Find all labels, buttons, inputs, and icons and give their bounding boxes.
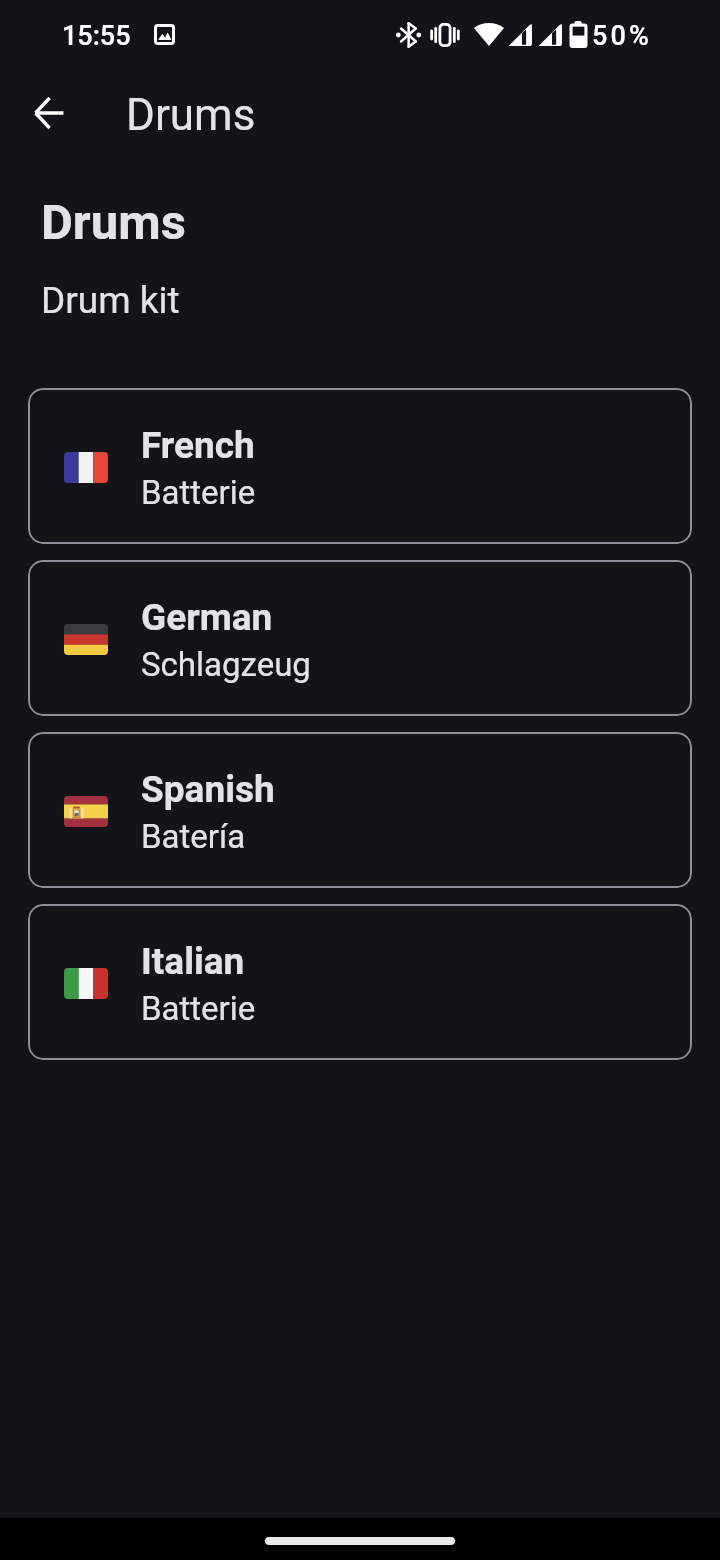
staticText: 50% (592, 20, 653, 52)
button[interactable]: German (28, 560, 692, 716)
staticText: Drums (126, 89, 256, 141)
button[interactable]: French (28, 388, 692, 544)
staticText: Batterie (141, 473, 256, 512)
staticText: Drums (41, 194, 186, 251)
staticText: Batería (141, 817, 246, 856)
staticText: Drum kit (41, 279, 180, 322)
staticText: Italian (141, 940, 245, 983)
button[interactable]: Spanish (28, 732, 692, 888)
staticText: German (141, 596, 273, 639)
button[interactable]: Italian (28, 904, 692, 1060)
staticText: Schlagzeug (141, 645, 311, 684)
staticText: 15:55 (62, 20, 131, 52)
staticText: Batterie (141, 989, 256, 1028)
button[interactable]: Back (21, 85, 77, 141)
staticText: Spanish (141, 768, 275, 811)
staticText: French (141, 424, 255, 467)
